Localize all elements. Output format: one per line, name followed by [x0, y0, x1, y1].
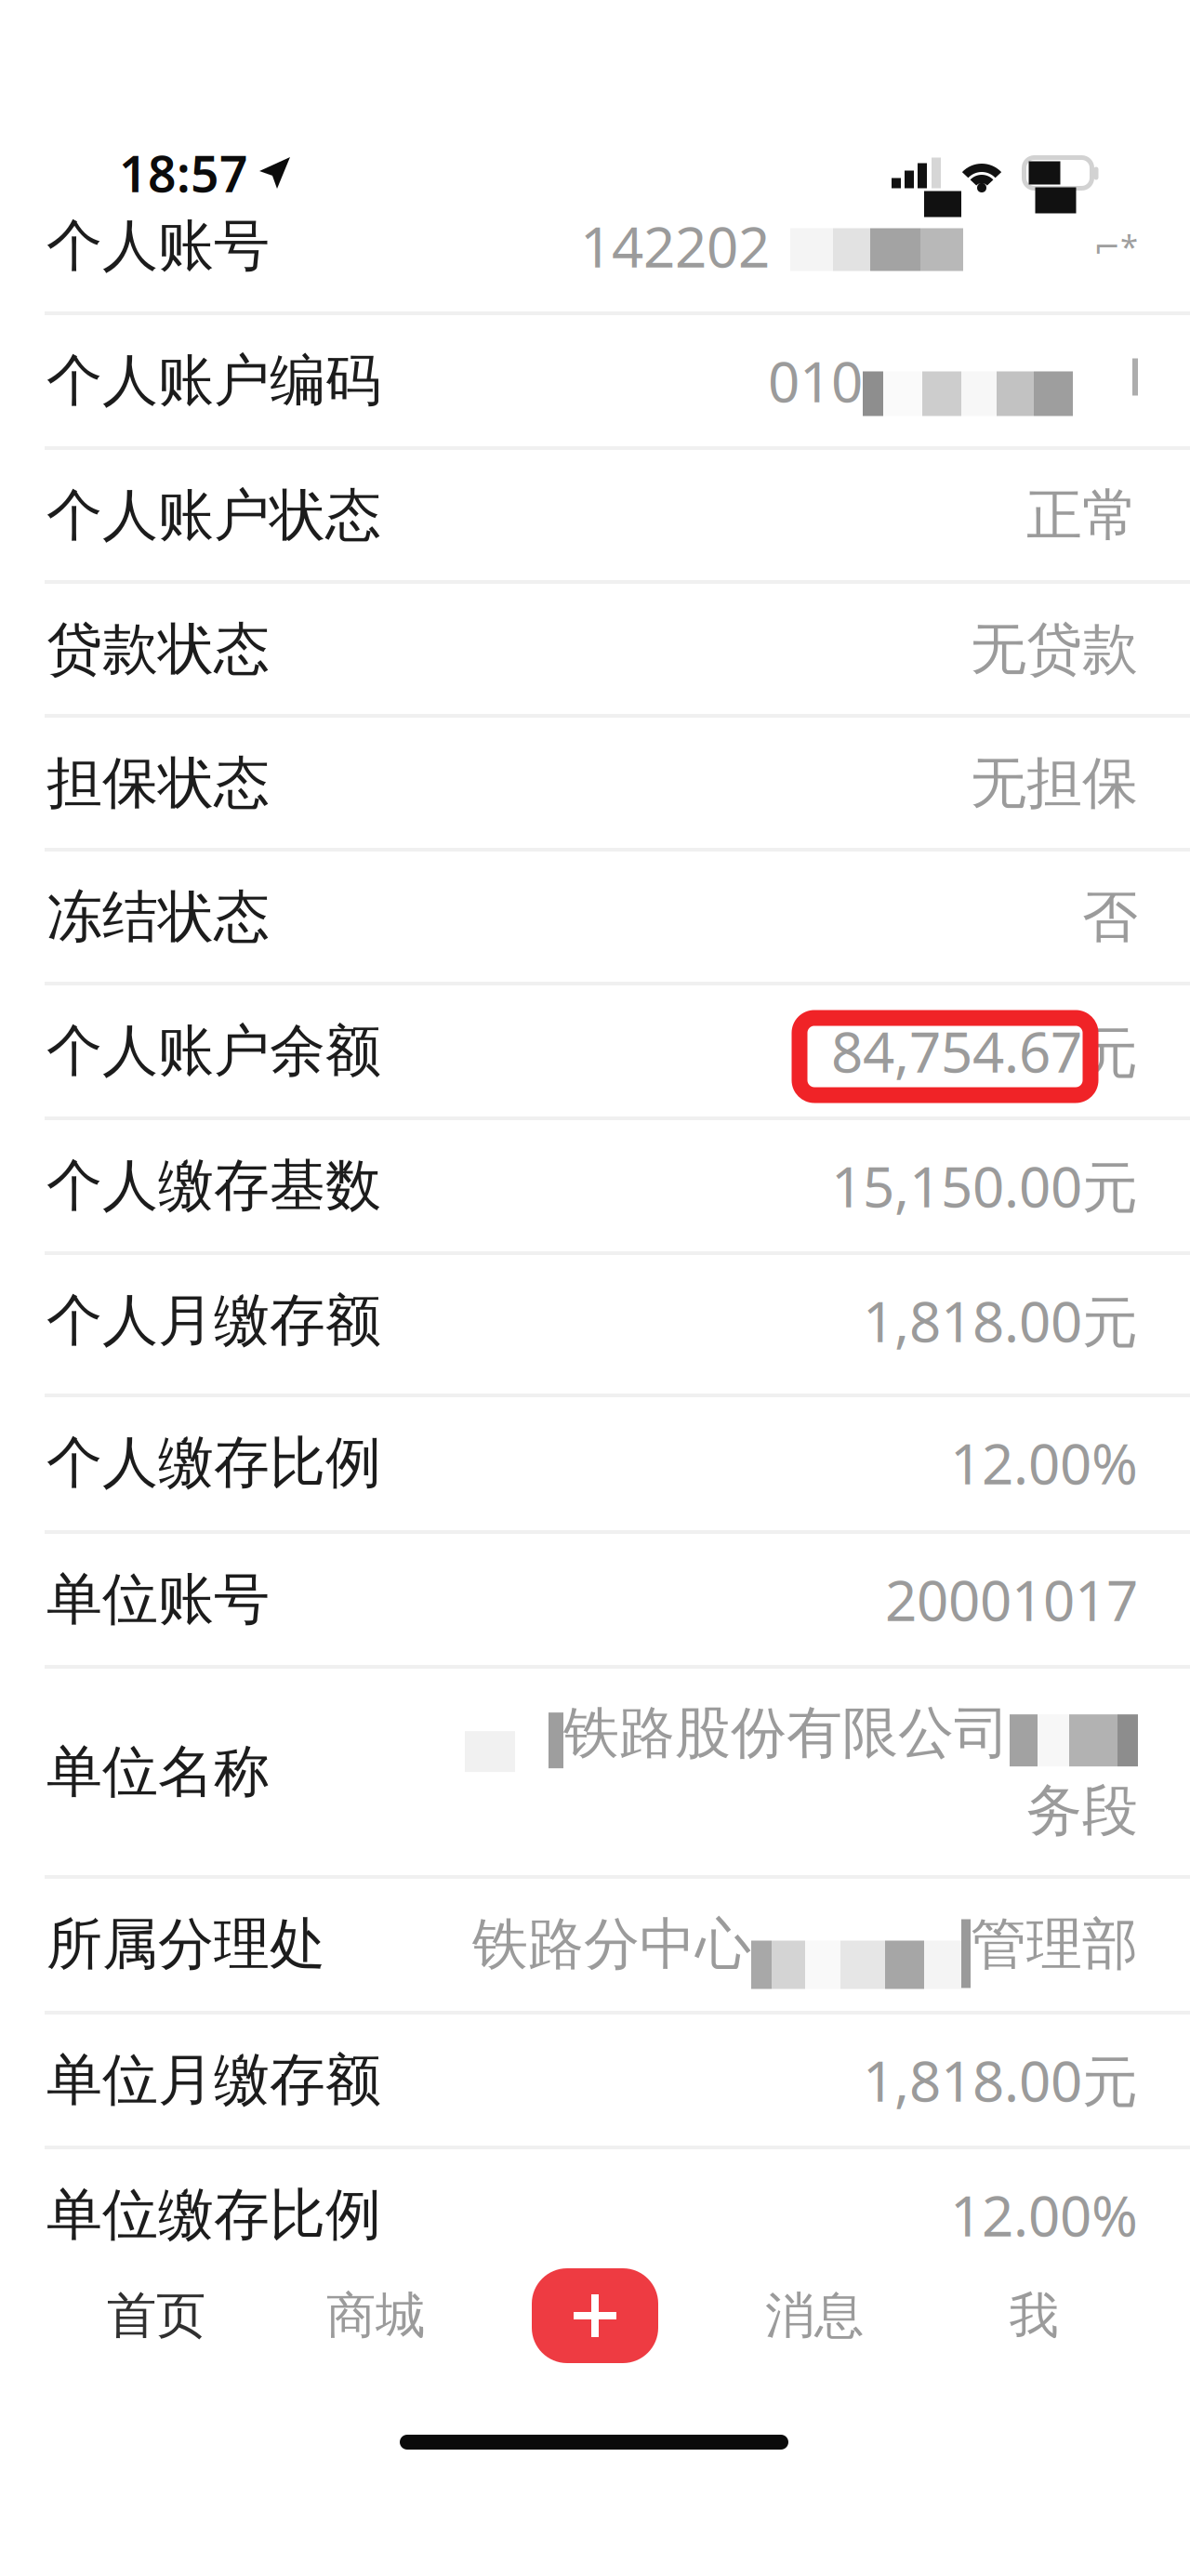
staticText: 无担保 — [971, 749, 1138, 818]
button[interactable]: 单位月缴存额 — [0, 2013, 1190, 2147]
staticText: 商城 — [326, 2285, 425, 2346]
staticText: ⌐* — [1093, 225, 1138, 267]
staticText: 首页 — [107, 2285, 205, 2346]
staticText: 个人账户状态 — [46, 481, 381, 550]
staticText: 担保状态 — [46, 749, 270, 818]
staticText: 冻结状态 — [46, 883, 270, 951]
button[interactable]: 单位缴存比例 — [0, 2147, 1190, 2282]
staticText: 个人账号 — [46, 212, 270, 280]
staticText: 单位缴存比例 — [46, 2181, 381, 2249]
staticText: 12.00% — [950, 2178, 1138, 2252]
staticText: 单位名称 — [46, 1738, 270, 1806]
button[interactable]: 个人账户余额 — [0, 984, 1190, 1118]
button[interactable]: 所属分理处 — [0, 1877, 1190, 2012]
button[interactable]: 发布 — [515, 2246, 675, 2385]
staticText: 20001017 — [885, 1562, 1138, 1637]
button[interactable]: 单位名称 — [0, 1667, 1190, 1877]
staticText: 单位月缴存额 — [46, 2046, 381, 2114]
button[interactable]: 个人账号 — [0, 178, 1190, 313]
button[interactable]: 首页 — [76, 2246, 236, 2385]
button[interactable]: 消息 — [734, 2246, 894, 2385]
staticText: 无贷款 — [971, 615, 1138, 684]
staticText: 所属分理处 — [46, 1910, 325, 1979]
button[interactable]: 个人缴存基数 — [0, 1118, 1190, 1253]
staticText: 个人缴存比例 — [46, 1429, 381, 1497]
button[interactable]: 个人账户编码 — [0, 313, 1190, 448]
button[interactable]: 个人缴存比例 — [0, 1395, 1190, 1530]
button[interactable]: 担保状态 — [0, 716, 1190, 851]
button[interactable]: 冻结状态 — [0, 850, 1190, 984]
staticText: 1,818.00元 — [863, 1284, 1138, 1358]
staticText: 个人缴存基数 — [46, 1152, 381, 1220]
staticText: 正常 — [1026, 481, 1138, 550]
staticText: 12.00% — [950, 1426, 1138, 1500]
staticText: 个人账户编码 — [46, 346, 381, 415]
staticText: 我 — [1009, 2285, 1058, 2346]
button[interactable]: 贷款状态 — [0, 582, 1190, 717]
button[interactable]: 我 — [954, 2246, 1114, 2385]
staticText: 否 — [1082, 883, 1138, 951]
button[interactable]: 个人月缴存额 — [0, 1253, 1190, 1388]
staticText: 18:57 — [119, 140, 248, 206]
staticText: 贷款状态 — [46, 615, 270, 684]
staticText: 铁路分中心 — [472, 1910, 751, 1979]
button[interactable]: 单位账号 — [0, 1532, 1190, 1667]
staticText: 84,754.67元 — [831, 1014, 1138, 1088]
staticText: 010 — [768, 344, 863, 418]
staticText: 务段 — [1026, 1777, 1138, 1845]
button[interactable]: 个人账户状态 — [0, 448, 1190, 583]
button[interactable]: 商城 — [296, 2246, 456, 2385]
staticText: 单位账号 — [46, 1565, 270, 1634]
staticText: 铁路股份有限公司 — [563, 1699, 1010, 1767]
staticText: 消息 — [765, 2285, 864, 2346]
staticText: 个人月缴存额 — [46, 1286, 381, 1355]
staticText: 管理部 — [971, 1910, 1138, 1979]
staticText: 15,150.00元 — [831, 1149, 1138, 1223]
staticText: 1,818.00元 — [863, 2043, 1138, 2117]
staticText: 142202 — [580, 209, 770, 283]
staticText: 个人账户余额 — [46, 1017, 381, 1085]
